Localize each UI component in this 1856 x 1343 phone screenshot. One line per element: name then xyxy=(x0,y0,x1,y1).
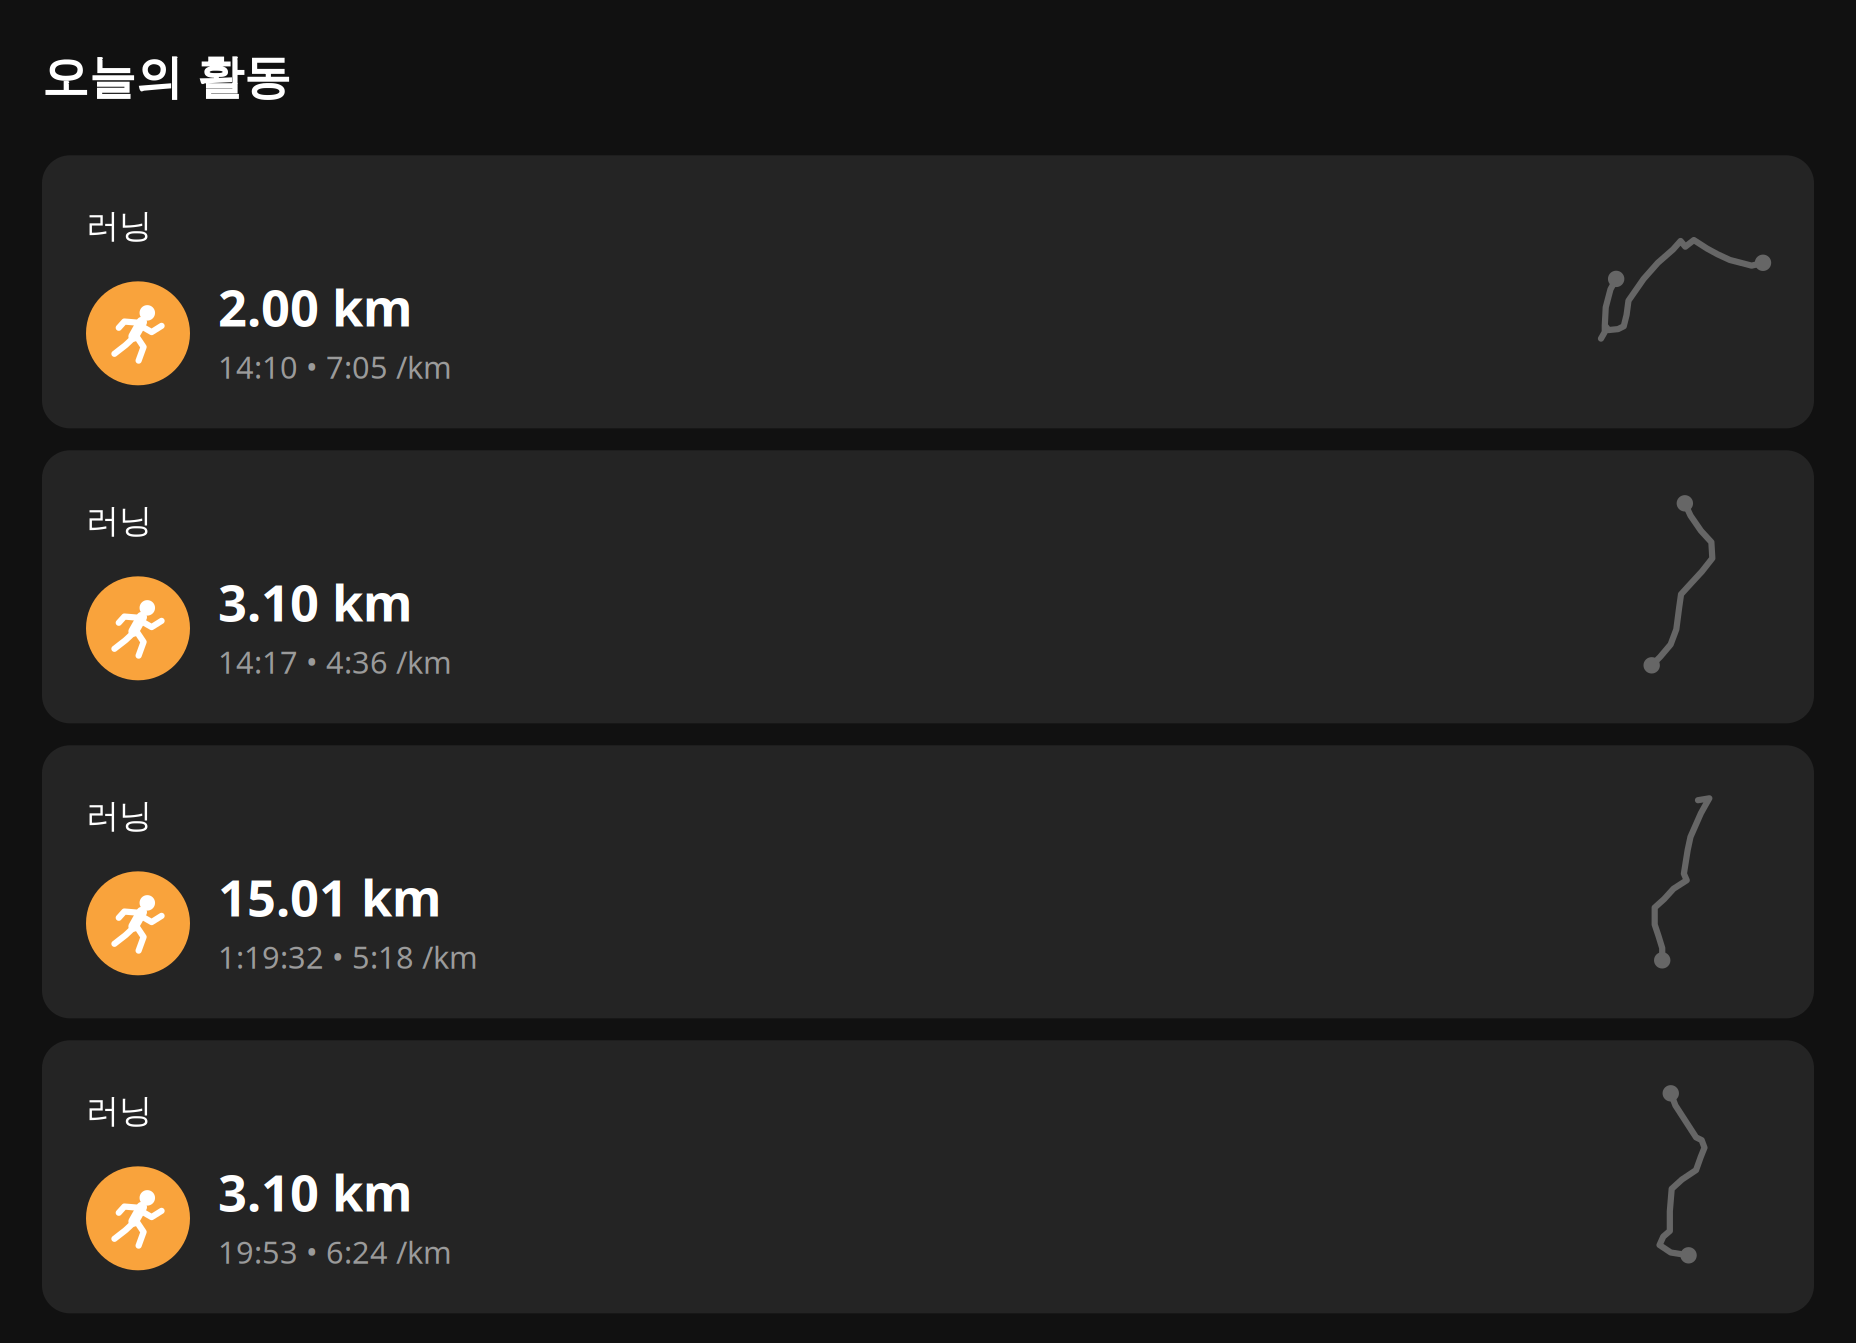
staticText: 1:19:32 • 5:18 /km xyxy=(218,937,478,977)
button[interactable]: 러닝 xyxy=(42,450,1814,723)
staticText: 3.10 km xyxy=(218,1158,412,1226)
staticText: 러닝 xyxy=(86,1090,152,1131)
staticText: 14:10 • 7:05 /km xyxy=(218,347,452,387)
staticText: 러닝 xyxy=(86,795,152,836)
staticText: 러닝 xyxy=(86,500,152,541)
button[interactable]: 러닝 xyxy=(42,155,1814,428)
staticText: 2.00 km xyxy=(218,273,412,341)
staticText: 14:17 • 4:36 /km xyxy=(218,642,452,682)
button[interactable]: 러닝 xyxy=(42,745,1814,1018)
button[interactable]: 러닝 xyxy=(42,1040,1814,1313)
staticText: 3.10 km xyxy=(218,568,412,636)
staticText: 오늘의 활동 xyxy=(42,49,291,106)
staticText: 15.01 km xyxy=(218,863,441,931)
staticText: 러닝 xyxy=(86,205,152,246)
staticText: 19:53 • 6:24 /km xyxy=(218,1232,452,1272)
